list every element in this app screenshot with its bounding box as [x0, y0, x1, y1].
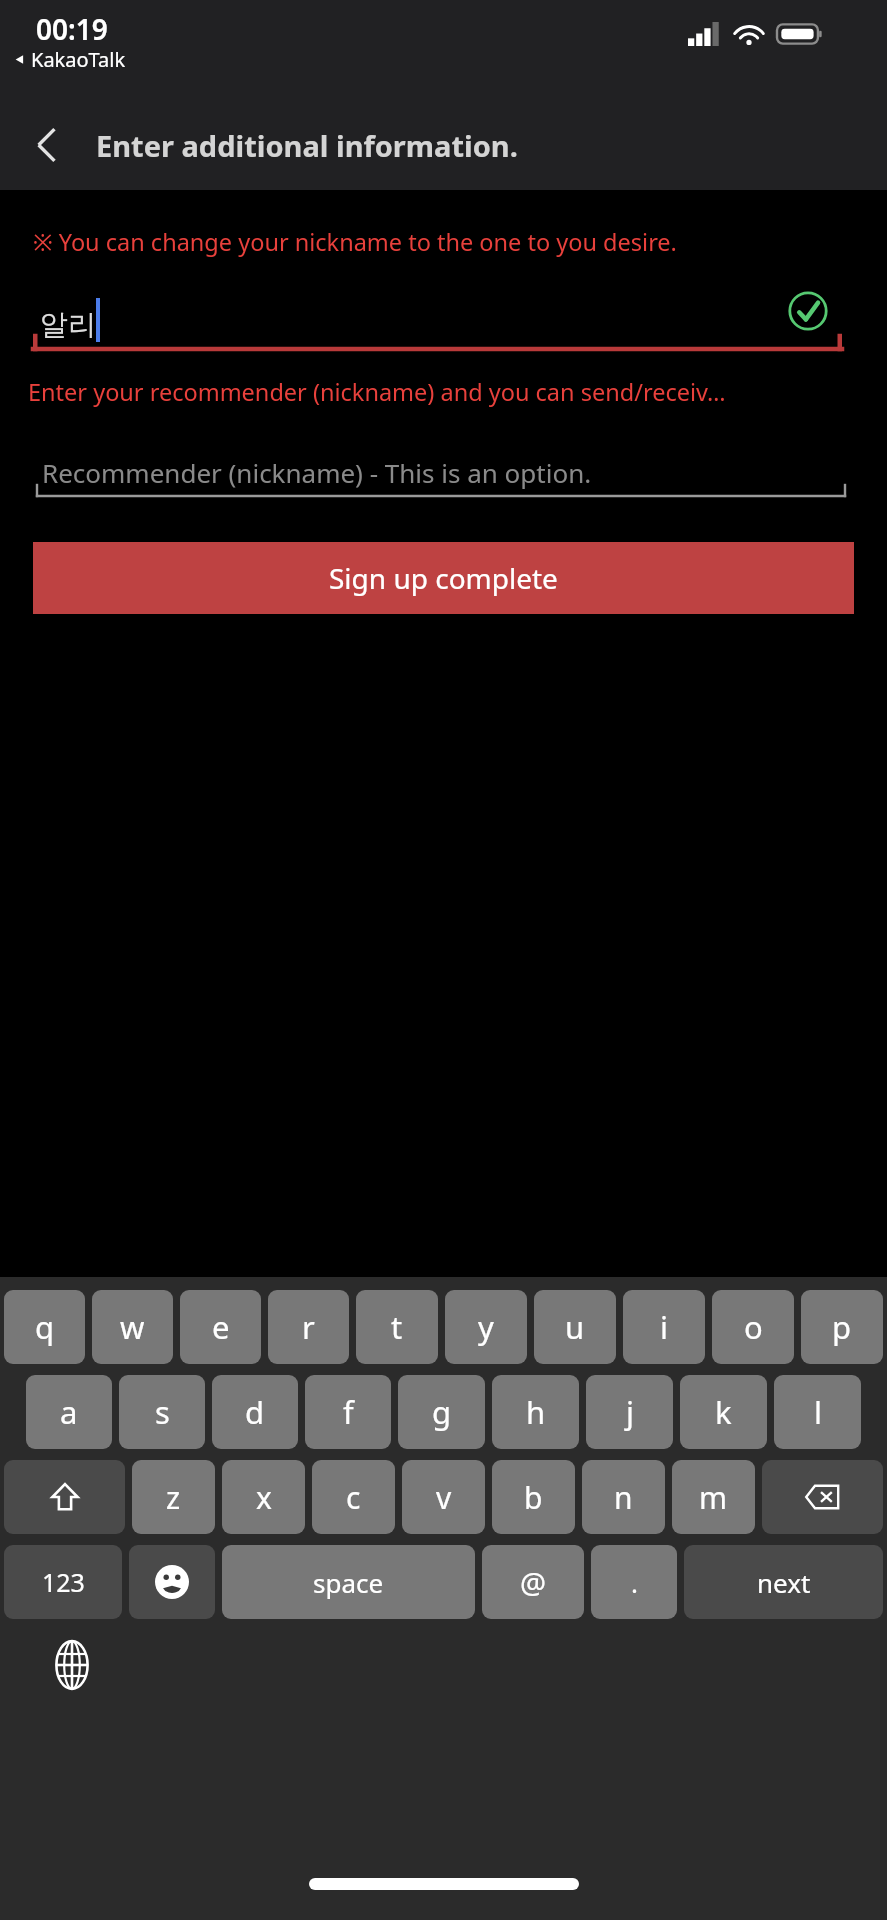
staticText: h: [526, 1391, 546, 1433]
button[interactable]: Shift: [4, 1460, 125, 1534]
button[interactable]: Nickname available: [787, 290, 829, 332]
button[interactable]: w: [92, 1290, 173, 1364]
staticText: u: [565, 1306, 585, 1348]
staticText: f: [343, 1391, 354, 1433]
button[interactable]: v: [402, 1460, 485, 1534]
staticText: k: [715, 1391, 732, 1433]
staticText: z: [166, 1477, 181, 1518]
staticText: v: [436, 1477, 452, 1518]
staticText: l: [814, 1391, 822, 1433]
staticText: Enter additional information.: [96, 126, 518, 165]
button[interactable]: c: [312, 1460, 395, 1534]
staticText: e: [212, 1306, 230, 1348]
button[interactable]: n: [582, 1460, 665, 1534]
staticText: j: [626, 1391, 634, 1433]
button[interactable]: r: [268, 1290, 349, 1364]
staticText: KakaoTalk: [31, 46, 126, 73]
button[interactable]: Recommender (nickname) - This is an opti…: [0, 436, 887, 502]
staticText: next: [757, 1565, 811, 1600]
staticText: m: [699, 1477, 728, 1518]
button[interactable]: .: [591, 1545, 677, 1619]
staticText: n: [614, 1477, 633, 1518]
button[interactable]: y: [445, 1290, 527, 1364]
button[interactable]: 123: [4, 1545, 122, 1619]
button[interactable]: Back: [0, 100, 96, 190]
button[interactable]: Backspace: [762, 1460, 883, 1534]
button[interactable]: next: [684, 1545, 883, 1619]
button[interactable]: o: [712, 1290, 794, 1364]
button[interactable]: f: [305, 1375, 391, 1449]
staticText: Sign up complete: [329, 559, 558, 597]
staticText: 00:19: [36, 10, 108, 48]
button[interactable]: d: [212, 1375, 298, 1449]
staticText: q: [35, 1306, 55, 1348]
staticText: r: [302, 1306, 315, 1348]
button[interactable]: m: [672, 1460, 755, 1534]
staticText: 알리: [40, 307, 96, 342]
staticText: @: [520, 1563, 547, 1602]
button[interactable]: Change language: [42, 1635, 102, 1695]
staticText: t: [391, 1306, 403, 1348]
staticText: x: [256, 1477, 272, 1518]
staticText: i: [660, 1306, 668, 1348]
button[interactable]: space: [222, 1545, 475, 1619]
staticText: g: [432, 1391, 452, 1433]
button[interactable]: t: [356, 1290, 438, 1364]
button[interactable]: e: [180, 1290, 261, 1364]
staticText: c: [346, 1477, 361, 1518]
staticText: d: [245, 1391, 265, 1433]
button[interactable]: l: [774, 1375, 861, 1449]
staticText: s: [155, 1391, 170, 1433]
button[interactable]: @: [482, 1545, 584, 1619]
staticText: b: [524, 1477, 543, 1518]
button[interactable]: h: [492, 1375, 579, 1449]
button[interactable]: q: [4, 1290, 85, 1364]
button[interactable]: a: [26, 1375, 112, 1449]
staticText: Enter your recommender (nickname) and yo…: [28, 376, 726, 408]
button[interactable]: x: [222, 1460, 305, 1534]
button[interactable]: Back to KakaoTalk: [12, 46, 126, 73]
staticText: ※ You can change your nickname to the on…: [33, 226, 677, 258]
button[interactable]: i: [623, 1290, 705, 1364]
button[interactable]: b: [492, 1460, 575, 1534]
button[interactable]: 알리: [0, 278, 887, 354]
staticText: o: [744, 1306, 763, 1348]
staticText: y: [478, 1306, 494, 1348]
button[interactable]: Sign up complete: [33, 542, 854, 614]
staticText: p: [832, 1306, 852, 1348]
button[interactable]: u: [534, 1290, 616, 1364]
staticText: space: [313, 1565, 384, 1600]
staticText: w: [120, 1306, 145, 1348]
button[interactable]: k: [680, 1375, 767, 1449]
staticText: Recommender (nickname) - This is an opti…: [42, 455, 592, 490]
button[interactable]: j: [586, 1375, 673, 1449]
button[interactable]: z: [132, 1460, 215, 1534]
staticText: .: [631, 1565, 638, 1600]
staticText: 123: [42, 1565, 85, 1599]
button[interactable]: Emoji: [129, 1545, 215, 1619]
button[interactable]: s: [119, 1375, 205, 1449]
button[interactable]: g: [398, 1375, 485, 1449]
button[interactable]: p: [801, 1290, 883, 1364]
staticText: a: [60, 1391, 78, 1433]
